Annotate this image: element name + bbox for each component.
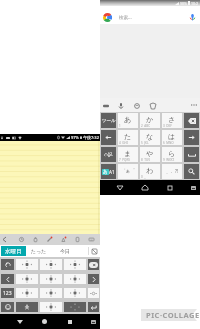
button[interactable]: Highlighter	[56, 234, 70, 245]
staticText: 8 TUV	[141, 158, 150, 162]
button[interactable]: key 2_4	[184, 147, 199, 162]
staticText: や	[146, 149, 154, 158]
staticText: 午後7:32	[83, 135, 99, 140]
button[interactable]: Paste	[70, 234, 84, 245]
staticText: 10:2	[191, 1, 198, 6]
staticText: ツール	[102, 118, 116, 124]
button[interactable]: key 2_2	[140, 147, 160, 162]
button[interactable]: Voice input	[115, 100, 126, 111]
button[interactable]: Clipboard	[100, 100, 111, 111]
staticText: は	[168, 132, 176, 141]
staticText: 98%	[180, 1, 187, 6]
staticText: ま	[124, 149, 132, 158]
button[interactable]: key 0_3	[64, 259, 86, 270]
button[interactable]: key 2_1	[16, 288, 38, 298]
button[interactable]: Home	[37, 314, 52, 329]
staticText: 9 WXYZ	[163, 158, 175, 162]
staticText: 4 GHI	[119, 141, 128, 145]
staticText: ら	[168, 149, 176, 158]
button[interactable]: key 2_1	[118, 147, 138, 162]
button[interactable]: Back	[0, 234, 8, 245]
button[interactable]: key 3_1	[16, 302, 38, 312]
staticText: か	[146, 115, 154, 124]
staticText: 123	[3, 290, 12, 297]
button[interactable]: key 2_3	[162, 147, 182, 162]
staticText: わ	[146, 166, 154, 175]
button[interactable]: key 3_4	[184, 164, 199, 179]
staticText: 5 JKL	[141, 141, 149, 145]
button[interactable]: key 1_3	[64, 274, 86, 284]
button[interactable]: key 1_4	[184, 130, 199, 145]
button[interactable]: key 2_3	[64, 288, 86, 298]
button[interactable]: Back	[12, 314, 27, 329]
button[interactable]: key 3_0	[101, 164, 116, 179]
staticText: A1	[109, 169, 115, 175]
button[interactable]: key 3_2	[40, 302, 62, 312]
button[interactable]: 水曜日	[0, 245, 26, 257]
button[interactable]: Translate	[147, 100, 158, 111]
button[interactable]: Keyboard	[84, 234, 98, 245]
staticText: 7 PQRS	[119, 158, 130, 162]
button[interactable]: key 0_2	[140, 113, 160, 128]
button[interactable]: key 3_2	[140, 164, 160, 179]
button[interactable]: key 3_3	[64, 302, 86, 312]
button[interactable]: key 3_1	[118, 164, 138, 179]
button[interactable]: key 1_3	[162, 130, 182, 145]
staticText: 水曜日	[5, 248, 22, 255]
button[interactable]: key 1_0	[1, 274, 14, 284]
button[interactable]: key 0_2	[40, 259, 62, 270]
button[interactable]: key 3_4	[88, 302, 99, 312]
button[interactable]: key 0_3	[162, 113, 182, 128]
staticText: 6 MNO	[163, 141, 174, 145]
button[interactable]: key 0_0	[101, 113, 116, 128]
button[interactable]: key 1_1	[16, 274, 38, 284]
staticText: た	[124, 132, 132, 141]
button[interactable]: key 3_3	[162, 164, 182, 179]
staticText: さ	[168, 115, 176, 124]
button[interactable]: Stickers	[131, 100, 142, 111]
staticText: 3 DEF	[163, 124, 172, 128]
button[interactable]: key 1_4	[88, 274, 99, 284]
button[interactable]: key 2_0	[101, 147, 116, 162]
button[interactable]: key 1_2	[140, 130, 160, 145]
staticText: 2 ABC	[141, 124, 151, 128]
button[interactable]: key 1_0	[101, 130, 116, 145]
button[interactable]: Recent apps	[62, 314, 77, 329]
button[interactable]: たった	[26, 245, 52, 257]
button[interactable]: key 0_4	[184, 113, 199, 128]
button[interactable]: key 0_4	[88, 259, 99, 270]
button[interactable]: Switch keyboard	[87, 316, 99, 328]
button[interactable]: 検索...	[100, 0, 200, 24]
button[interactable]: Home	[137, 180, 152, 195]
button[interactable]: More options	[189, 100, 199, 110]
staticText: ゛ぁ゜	[121, 168, 135, 174]
staticText: 97%	[71, 135, 79, 140]
button[interactable]: key 3_0	[1, 302, 14, 312]
staticText: あ	[103, 169, 108, 175]
button[interactable]: key 2_0	[1, 288, 14, 298]
staticText: 記	[108, 152, 113, 158]
staticText: たった	[31, 248, 47, 254]
staticText: 、。?!	[166, 168, 179, 174]
button[interactable]: Pen	[42, 234, 56, 245]
staticText: 今日	[60, 248, 70, 254]
button[interactable]: Recent apps	[162, 180, 177, 195]
button[interactable]: More suggestions	[89, 245, 100, 257]
button[interactable]: Clipboard	[28, 234, 42, 245]
button[interactable]: key 1_2	[40, 274, 62, 284]
button[interactable]: Recent	[14, 234, 28, 245]
button[interactable]: 今日	[52, 245, 78, 257]
button[interactable]: key 2_2	[40, 288, 62, 298]
staticText: な	[146, 132, 154, 141]
button[interactable]: key 0_1	[16, 259, 38, 270]
button[interactable]: Back	[112, 180, 127, 195]
button[interactable]: key 0_1	[118, 113, 138, 128]
button[interactable]: key 0_0	[1, 259, 14, 270]
button[interactable]: key 2_4	[88, 288, 99, 298]
staticText: あ	[124, 115, 132, 124]
staticText: PIC·COLLAGE	[146, 310, 200, 320]
button[interactable]: Switch keyboard	[187, 182, 199, 194]
staticText: 1	[119, 124, 121, 128]
staticText: 検索...	[119, 14, 132, 20]
button[interactable]: key 1_1	[118, 130, 138, 145]
